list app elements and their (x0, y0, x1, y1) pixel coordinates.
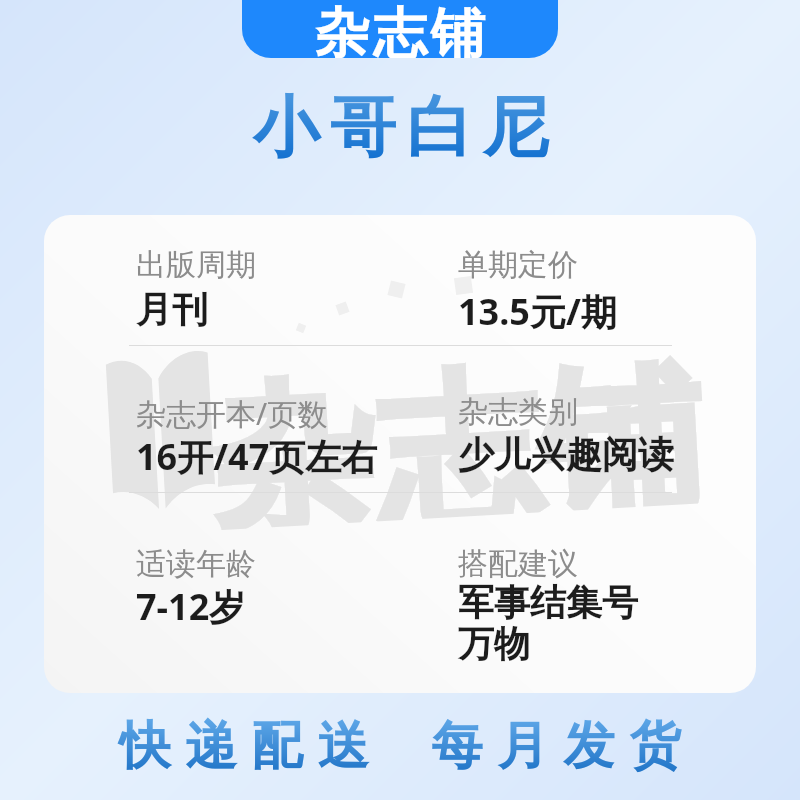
staticText: 出版周期 (136, 246, 256, 284)
staticText: 月刊 (136, 287, 208, 332)
staticText: 小哥白尼 (248, 86, 554, 169)
staticText: 少儿兴趣阅读 (458, 432, 674, 477)
staticText: 杂志类别 (458, 393, 578, 431)
staticText: 搭配建议 (458, 545, 578, 583)
staticText: 7-12岁 (136, 582, 246, 631)
staticText: 每月发货 (424, 714, 688, 778)
staticText: 军事结集号 万物 (458, 580, 638, 666)
staticText: 单期定价 (458, 246, 578, 284)
staticText: 快递配送 (112, 714, 376, 778)
staticText: 13.5元/期 (458, 287, 617, 336)
staticText: 16开/47页左右 (136, 432, 378, 481)
staticText: 杂志铺 (204, 338, 708, 531)
button[interactable]: 杂志铺 (242, 0, 558, 58)
staticText: 杂志铺 (313, 0, 487, 58)
staticText: 适读年龄 (136, 545, 256, 583)
staticText: 杂志开本/页数 (136, 393, 328, 434)
